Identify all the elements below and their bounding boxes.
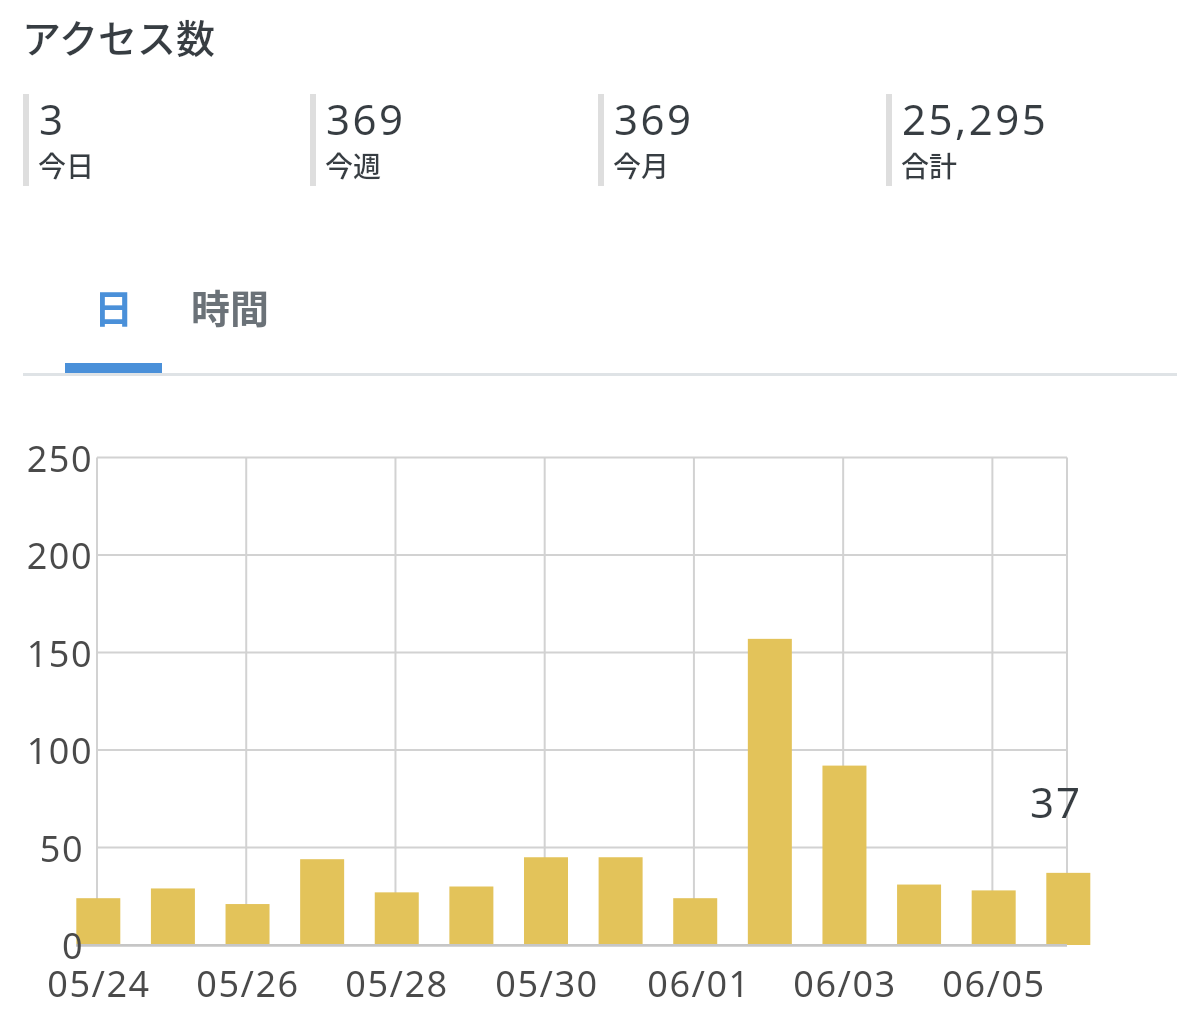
- other: Today 37 views: [986, 773, 1126, 821]
- staticText: 06/03: [793, 959, 897, 1008]
- button[interactable]: 3: [23, 94, 303, 186]
- staticText: 0: [61, 921, 84, 970]
- staticText: 05/28: [345, 959, 449, 1008]
- button[interactable]: 日: [65, 270, 162, 342]
- staticText: 369: [614, 90, 694, 147]
- staticText: 100: [26, 726, 93, 775]
- staticText: 今月: [613, 145, 670, 186]
- staticText: 06/05: [942, 959, 1046, 1008]
- staticText: 25,295: [902, 90, 1049, 147]
- staticText: 今日: [38, 145, 95, 186]
- staticText: アクセス数: [22, 8, 216, 64]
- staticText: 37: [1030, 773, 1083, 821]
- button[interactable]: 369: [598, 94, 878, 186]
- staticText: 200: [26, 531, 93, 580]
- staticText: 05/26: [196, 959, 300, 1008]
- button[interactable]: 369: [310, 94, 590, 186]
- staticText: 50: [39, 824, 84, 873]
- button[interactable]: 25,295: [886, 94, 1166, 186]
- staticText: 時間: [191, 278, 270, 334]
- staticText: 05/24: [47, 959, 151, 1008]
- button[interactable]: 時間: [182, 270, 279, 342]
- staticText: 06/01: [647, 959, 751, 1008]
- staticText: 150: [26, 629, 93, 678]
- staticText: 369: [326, 90, 406, 147]
- staticText: 今週: [325, 145, 382, 186]
- staticText: 合計: [901, 145, 958, 186]
- staticText: 05/30: [495, 959, 599, 1008]
- staticText: 日: [94, 278, 134, 334]
- staticText: 3: [39, 90, 66, 147]
- staticText: 250: [26, 434, 93, 483]
